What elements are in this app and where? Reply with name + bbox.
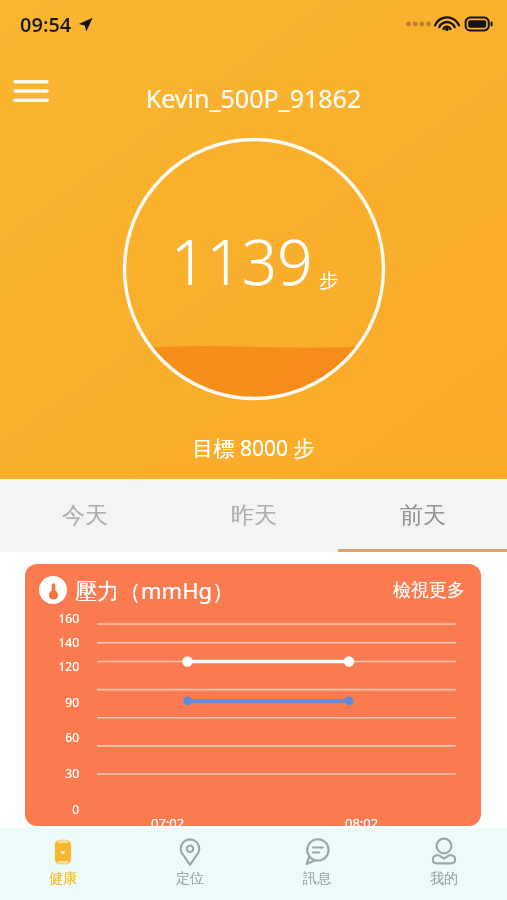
staticText: 昨天 [231, 501, 277, 530]
staticText: 定位 [176, 870, 204, 888]
button[interactable]: 壓力（mmHg） [25, 564, 481, 826]
button[interactable]: 訊息 [253, 828, 380, 900]
staticText: 今天 [62, 501, 108, 530]
staticText: 目標 8000 步 [0, 434, 507, 463]
staticText: 前天 [400, 501, 446, 530]
staticText: 我的 [430, 870, 458, 888]
button[interactable]: 我的 [380, 828, 507, 900]
staticText: Kevin_500P_91862 [0, 81, 507, 115]
button[interactable]: Menu [8, 68, 54, 114]
button[interactable]: 今天 [0, 479, 169, 552]
staticText: 08:02 [345, 814, 379, 826]
staticText: 160 [33, 610, 79, 626]
staticText: 壓力（mmHg） [75, 575, 234, 605]
staticText: 30 [33, 765, 79, 781]
staticText: 120 [33, 658, 79, 674]
button[interactable]: 前天 [338, 479, 507, 552]
button[interactable]: 定位 [126, 828, 253, 900]
staticText: 09:54 [20, 11, 72, 38]
staticText: 07:02 [151, 814, 185, 826]
staticText: 訊息 [303, 870, 331, 888]
staticText: 90 [33, 694, 79, 710]
staticText: 健康 [49, 870, 77, 888]
button[interactable]: 檢視更多 [393, 579, 465, 602]
staticText: 0 [33, 801, 79, 817]
staticText: 步 [319, 269, 338, 293]
staticText: 60 [33, 729, 79, 745]
button[interactable]: 健康 [0, 828, 126, 900]
staticText: 140 [33, 634, 79, 650]
staticText: 1139 [171, 219, 313, 303]
button[interactable]: 昨天 [169, 479, 338, 552]
